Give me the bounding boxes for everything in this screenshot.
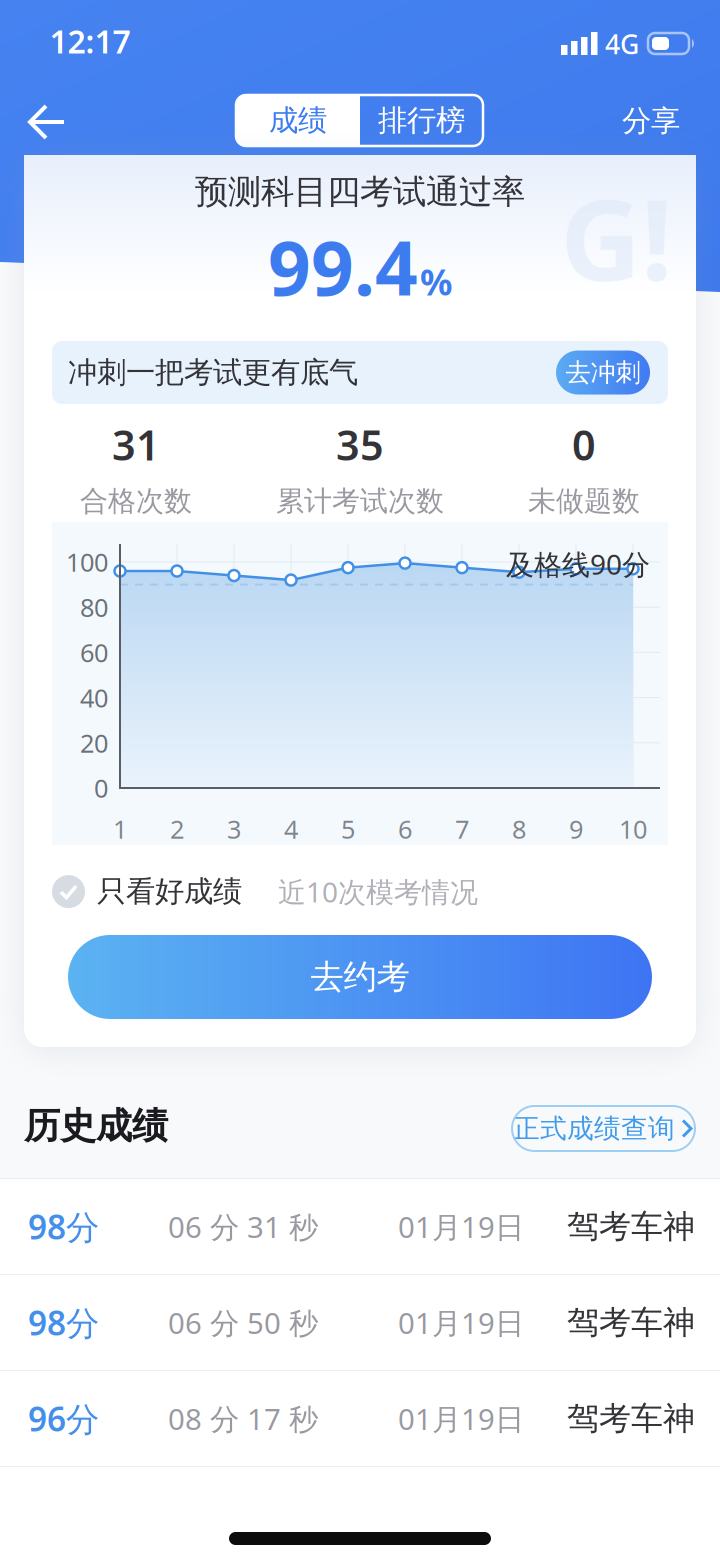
staticText: 4 (284, 812, 298, 846)
staticText: 80 (80, 590, 108, 624)
staticText: 9 (569, 812, 583, 846)
staticText: 1 (113, 812, 127, 846)
button[interactable]: 去冲刺 (556, 350, 650, 394)
staticText: 驾考车神 (567, 1207, 695, 1246)
staticText: 01月19日 (398, 1399, 524, 1438)
staticText: 98分 (28, 1300, 99, 1345)
button[interactable]: Back (16, 88, 78, 156)
staticText: 3 (227, 812, 241, 846)
staticText: 99.4 (268, 217, 418, 316)
staticText: 35 (336, 417, 384, 472)
staticText: 12:17 (49, 20, 130, 62)
button[interactable]: 分享 (606, 96, 696, 146)
staticText: 近10次模考情况 (278, 873, 478, 910)
staticText: 06 分 50 秒 (168, 1303, 318, 1342)
staticText: 冲刺一把考试更有底气 (68, 354, 358, 390)
staticText: 60 (80, 636, 108, 669)
staticText: 31 (112, 417, 160, 472)
staticText: 8 (512, 812, 526, 846)
staticText: 合格次数 (80, 484, 192, 518)
staticText: 及格线90分 (506, 545, 650, 583)
staticText: 6 (398, 812, 412, 846)
staticText: G! (560, 163, 673, 312)
button[interactable]: 成绩 (236, 95, 360, 146)
staticText: 0 (572, 417, 596, 472)
staticText: 分享 (622, 103, 680, 139)
staticText: 预测科目四考试通过率 (195, 171, 525, 212)
staticText: 去约考 (310, 956, 409, 997)
staticText: 5 (341, 812, 355, 846)
button[interactable]: 正式成绩查询 (512, 1106, 695, 1151)
staticText: 历史成绩 (24, 1104, 168, 1148)
staticText: 排行榜 (378, 102, 465, 138)
staticText: 10 (619, 812, 647, 846)
staticText: 98分 (28, 1204, 99, 1249)
staticText: 驾考车神 (567, 1399, 695, 1438)
staticText: 100 (66, 545, 108, 579)
staticText: 20 (80, 726, 108, 760)
staticText: 未做题数 (528, 484, 640, 518)
staticText: 0 (94, 771, 108, 805)
staticText: 96分 (28, 1396, 99, 1441)
button[interactable]: 只看好成绩 (52, 874, 242, 910)
staticText: 06 分 31 秒 (168, 1207, 318, 1246)
button[interactable]: 96分 (0, 1371, 720, 1467)
staticText: 驾考车神 (567, 1303, 695, 1342)
button[interactable]: 98分 (0, 1275, 720, 1371)
staticText: 01月19日 (398, 1207, 524, 1246)
staticText: 08 分 17 秒 (168, 1399, 318, 1438)
button[interactable]: 98分 (0, 1179, 720, 1275)
staticText: 2 (170, 812, 184, 846)
button[interactable]: 排行榜 (360, 95, 483, 146)
staticText: 只看好成绩 (97, 874, 242, 910)
staticText: 成绩 (269, 102, 327, 138)
staticText: 7 (455, 812, 469, 846)
button[interactable]: 去约考 (68, 935, 652, 1019)
staticText: 累计考试次数 (276, 484, 444, 518)
staticText: 40 (80, 681, 108, 714)
staticText: 正式成绩查询 (513, 1112, 675, 1145)
staticText: 4G (605, 26, 639, 62)
staticText: % (420, 258, 452, 305)
staticText: 去冲刺 (565, 357, 640, 388)
staticText: 01月19日 (398, 1303, 524, 1342)
